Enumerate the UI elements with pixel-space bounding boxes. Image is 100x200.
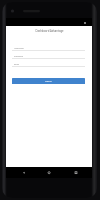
button[interactable]: Log In bbox=[12, 78, 85, 84]
button[interactable]: Email bbox=[12, 59, 85, 67]
button[interactable]: Back bbox=[6, 167, 34, 178]
button[interactable]: Username bbox=[12, 43, 85, 51]
button[interactable]: Password bbox=[12, 51, 85, 59]
staticText: Log In bbox=[45, 80, 52, 83]
button[interactable]: Home bbox=[34, 167, 63, 178]
staticText: Password bbox=[14, 55, 24, 58]
staticText: Email bbox=[14, 63, 20, 66]
button[interactable]: Recents bbox=[63, 167, 92, 178]
staticText: Username bbox=[14, 47, 24, 50]
staticText: Dashboard Advantage bbox=[35, 29, 64, 33]
